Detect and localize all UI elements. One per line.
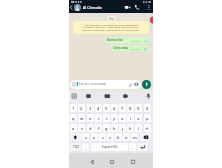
button[interactable]: g [103, 124, 110, 132]
button[interactable]: 7 [119, 104, 126, 112]
button[interactable]: , [82, 143, 89, 151]
button[interactable]: u [119, 114, 126, 122]
button[interactable] [137, 143, 148, 151]
button[interactable] [134, 4, 140, 10]
staticText: 7 [121, 106, 124, 111]
staticText: n [125, 135, 128, 140]
staticText: 8 [129, 106, 132, 111]
staticText: 1 [72, 106, 75, 111]
button[interactable] [130, 159, 136, 165]
button[interactable]: 1 [70, 104, 77, 112]
button[interactable]: ñ [144, 124, 151, 132]
staticText: ñ [146, 126, 149, 131]
button[interactable]: i [127, 114, 134, 122]
button[interactable]: Escribe un mensaje [70, 80, 141, 89]
staticText: 11:58 a. m. [130, 40, 141, 43]
button[interactable]: 0 [144, 104, 151, 112]
staticText: p [146, 116, 149, 121]
button[interactable]: w [78, 114, 85, 122]
button[interactable]: q [70, 114, 77, 122]
button[interactable] [109, 159, 115, 165]
button[interactable] [70, 133, 81, 141]
button[interactable]: 8 [127, 104, 134, 112]
staticText: w [80, 116, 84, 121]
button[interactable]: 2 [78, 104, 85, 112]
staticText: y [113, 116, 116, 121]
button[interactable]: s [78, 124, 85, 132]
button[interactable]: 6 [111, 104, 118, 112]
button[interactable]: r [95, 114, 102, 122]
button[interactable]: n [123, 133, 130, 141]
button[interactable]: m [131, 133, 138, 141]
button[interactable] [74, 4, 81, 11]
staticText: c [102, 135, 104, 140]
staticText: z [85, 135, 87, 140]
button[interactable]: z [82, 133, 89, 141]
button[interactable]: t [103, 114, 110, 122]
staticText: b [117, 135, 120, 140]
button[interactable]: d [87, 124, 94, 132]
button[interactable]: ?123 [70, 143, 81, 151]
button[interactable]: y [111, 114, 118, 122]
staticText: Hoy [109, 17, 114, 21]
staticText: 4 [97, 106, 100, 111]
staticText: a [72, 126, 75, 131]
button[interactable]: p [144, 114, 151, 122]
button[interactable] [124, 5, 131, 10]
staticText: 5 [105, 106, 108, 111]
button[interactable] [140, 133, 151, 141]
staticText: s [81, 126, 83, 131]
button[interactable]: b [115, 133, 122, 141]
staticText: v [109, 135, 112, 140]
button[interactable]: a [70, 124, 77, 132]
button[interactable]: 3 [87, 104, 94, 112]
staticText: j [122, 126, 124, 131]
staticText: r [98, 116, 100, 121]
button[interactable] [147, 4, 151, 11]
button[interactable]: 4 [95, 104, 102, 112]
button[interactable] [89, 159, 95, 165]
button[interactable]: j [119, 124, 126, 132]
button[interactable]: 5 [103, 104, 110, 112]
staticText: o [137, 116, 140, 121]
button[interactable]: h [111, 124, 118, 132]
button[interactable]: k [127, 124, 134, 132]
staticText: x [93, 135, 96, 140]
button[interactable]: Al Cómodo [83, 5, 102, 10]
staticText: l [138, 126, 140, 131]
button[interactable]: . [129, 143, 136, 151]
button[interactable]: Español (US) [91, 143, 128, 151]
button[interactable]: x [91, 133, 98, 141]
staticText: ?123 [73, 145, 79, 149]
button[interactable]: 9 [135, 104, 142, 112]
staticText: Escribe un mensaje [79, 82, 107, 86]
staticText: d [89, 126, 92, 131]
staticText: 0 [146, 106, 149, 111]
staticText: g [105, 126, 108, 131]
staticText: i [130, 116, 132, 121]
staticText: 3 [89, 106, 92, 111]
staticText: t [106, 116, 108, 121]
staticText: 9 [137, 106, 140, 111]
staticText: Buenos días [107, 38, 123, 42]
staticText: , [85, 145, 87, 150]
button[interactable] [142, 80, 151, 89]
button[interactable]: c [99, 133, 106, 141]
staticText: Los mensajes y las llamadas están cifrad… [82, 23, 140, 32]
staticText: e [89, 116, 92, 121]
button[interactable]: o [135, 114, 142, 122]
staticText: k [129, 126, 132, 131]
staticText: h [113, 126, 116, 131]
button[interactable] [69, 3, 74, 12]
button[interactable]: l [135, 124, 142, 132]
staticText: 6 [113, 106, 116, 111]
staticText: Cómo estás [113, 46, 128, 50]
button[interactable]: e [87, 114, 94, 122]
staticText: f [98, 126, 100, 131]
button[interactable]: v [107, 133, 114, 141]
button[interactable]: f [95, 124, 102, 132]
staticText: Español (US) [102, 145, 118, 149]
staticText: q [72, 116, 75, 121]
staticText: m [133, 135, 137, 140]
staticText: 11:58 a. m. [130, 48, 141, 51]
